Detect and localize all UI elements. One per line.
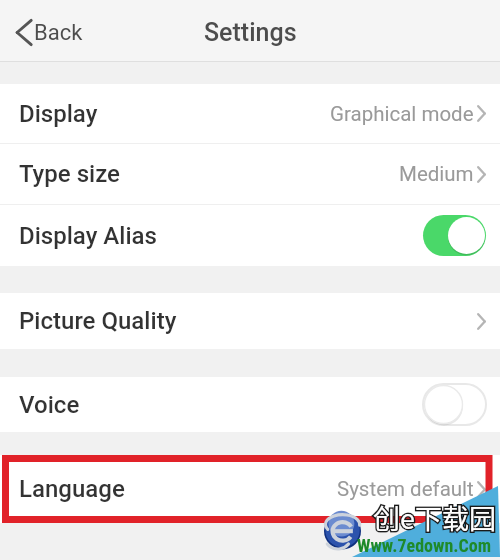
button[interactable]: Language	[0, 455, 500, 523]
staticText: Language	[19, 475, 125, 503]
staticText: System default	[337, 477, 474, 501]
button[interactable]: Switch off	[423, 384, 486, 425]
staticText: Medium	[399, 162, 474, 186]
staticText: Back	[34, 20, 83, 46]
staticText: 创e下载园	[373, 498, 496, 537]
button[interactable]: Picture Quality	[0, 293, 500, 349]
staticText: 创e下载园	[373, 498, 496, 537]
button[interactable]: Display	[0, 84, 500, 143]
staticText: Www.7edown.Com	[357, 535, 492, 556]
staticText: Type size	[19, 160, 120, 188]
button[interactable]: Display Alias	[0, 205, 500, 266]
button[interactable]: Type size	[0, 144, 500, 204]
staticText: Voice	[19, 391, 80, 419]
other: Back	[16, 19, 32, 46]
staticText: Picture Quality	[19, 307, 177, 335]
button[interactable]: Voice	[0, 377, 500, 432]
staticText: Settings	[204, 18, 297, 47]
staticText: Graphical mode	[330, 102, 474, 126]
button[interactable]: Back	[0, 11, 95, 54]
button[interactable]: Switch on	[423, 215, 486, 256]
staticText: Display Alias	[19, 222, 157, 250]
staticText: Display	[19, 100, 98, 128]
